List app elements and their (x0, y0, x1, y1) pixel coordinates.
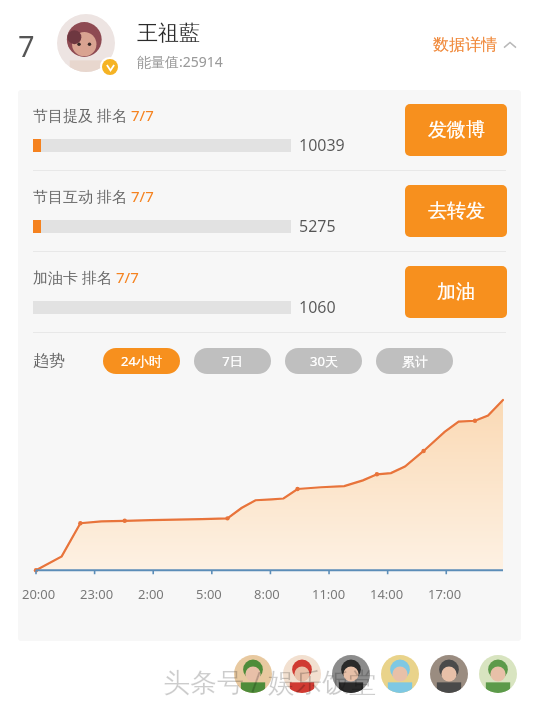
staticText: 10039 (299, 134, 345, 156)
button[interactable]: Fan avatar 2 (283, 655, 321, 693)
staticText: 数据详情 (433, 35, 497, 55)
staticText: 14:00 (370, 585, 404, 603)
button[interactable]: 加油 (405, 266, 507, 318)
staticText: 7 (18, 26, 35, 65)
button[interactable]: Fan avatar 4 (381, 655, 419, 693)
staticText: 23:00 (80, 585, 114, 603)
staticText: 头条号 / 娱乐饭堂 (163, 663, 377, 700)
button[interactable]: 7日 (194, 348, 271, 374)
staticText: 节目提及 排名 (33, 105, 131, 125)
button[interactable]: Fan avatar 6 (479, 655, 517, 693)
staticText: 加油卡 排名 (33, 267, 116, 287)
staticText: 王祖藍 (137, 20, 200, 46)
staticText: 节目互动 排名 (33, 186, 131, 206)
staticText: 1060 (299, 296, 336, 318)
staticText: 2:00 (138, 585, 164, 603)
staticText: 5275 (299, 215, 336, 237)
staticText: 7/7 (116, 267, 139, 287)
staticText: 7/7 (131, 186, 154, 206)
button[interactable]: 去转发 (405, 185, 507, 237)
staticText: 24小时 (121, 352, 162, 370)
button[interactable]: 累计 (376, 348, 453, 374)
staticText: 趋势 (33, 351, 65, 371)
staticText: 7日 (222, 352, 243, 370)
button[interactable]: 数据详情 (429, 31, 521, 59)
staticText: 发微博 (428, 118, 485, 142)
staticText: 8:00 (254, 585, 280, 603)
staticText: 30天 (310, 352, 338, 370)
staticText: 去转发 (428, 199, 485, 223)
staticText: 累计 (402, 353, 428, 369)
button[interactable]: Fan avatar 5 (430, 655, 468, 693)
button[interactable]: Fan avatar 1 (234, 655, 272, 693)
staticText: 7/7 (131, 105, 154, 125)
staticText: 加油 (437, 280, 475, 304)
staticText: 11:00 (312, 585, 346, 603)
staticText: 5:00 (196, 585, 222, 603)
button[interactable]: 30天 (285, 348, 362, 374)
staticText: 17:00 (428, 585, 462, 603)
staticText: 能量值:25914 (137, 52, 223, 71)
staticText: 20:00 (22, 585, 56, 603)
button[interactable]: Fan avatar 3 (332, 655, 370, 693)
button[interactable]: 发微博 (405, 104, 507, 156)
button[interactable]: 24小时 (103, 348, 180, 374)
